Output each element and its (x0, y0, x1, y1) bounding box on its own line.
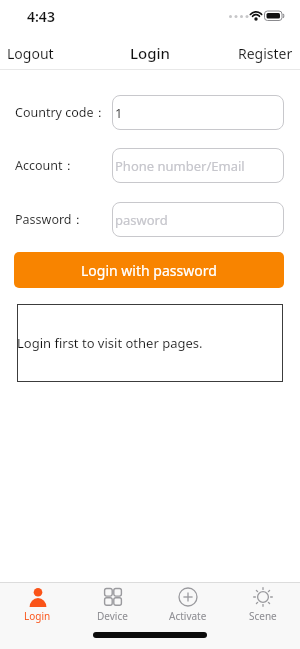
staticText: Scene (249, 609, 277, 623)
staticText: pasword (115, 211, 168, 229)
staticText: Register (238, 44, 293, 63)
button[interactable]: Logout (0, 41, 110, 65)
staticText: Password： (15, 211, 85, 228)
staticText: Login (24, 609, 51, 623)
button[interactable]: Activate (150, 583, 225, 631)
button[interactable]: Login (0, 583, 75, 631)
button[interactable]: Scene (225, 583, 300, 631)
button[interactable]: Phone number/Email (112, 148, 284, 183)
button[interactable]: pasword (112, 202, 284, 237)
button[interactable]: Register (190, 41, 300, 65)
staticText: Login with password (81, 261, 217, 280)
staticText: Logout (7, 44, 54, 63)
button[interactable]: Login with password (14, 252, 284, 288)
staticText: 4:43 (27, 7, 55, 26)
staticText: Phone number/Email (115, 157, 245, 175)
staticText: Login (130, 43, 170, 63)
button[interactable]: 1 (112, 95, 284, 130)
staticText: Account： (15, 157, 76, 174)
staticText: Country code： (15, 104, 107, 121)
button[interactable]: Login (120, 41, 180, 65)
button[interactable]: Device (75, 583, 150, 631)
staticText: 1 (115, 104, 123, 122)
staticText: Device (97, 609, 128, 623)
staticText: Activate (169, 609, 207, 623)
staticText: Login first to visit other pages. (17, 334, 203, 352)
